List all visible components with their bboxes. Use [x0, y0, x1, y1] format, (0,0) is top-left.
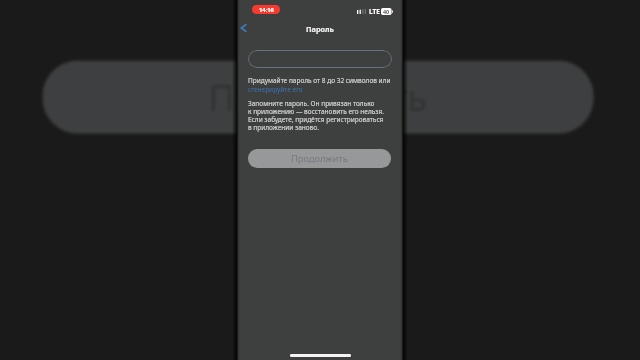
button[interactable]	[248, 50, 392, 68]
staticText: LTE	[369, 7, 380, 16]
staticText: Пароль	[306, 24, 334, 34]
staticText: Продолжить	[208, 72, 428, 122]
button[interactable]: Back	[235, 20, 251, 36]
staticText: Придумайте пароль от 8 до 32 символов ил…	[248, 76, 391, 85]
staticText: 14:16	[259, 6, 274, 14]
button[interactable]: Продолжить	[248, 149, 391, 168]
staticText: 40	[381, 8, 391, 15]
staticText: Продолжить	[291, 152, 348, 165]
button[interactable]: сгенерируйте его	[248, 85, 303, 94]
staticText: Запомните пароль. Он привязан только к п…	[248, 99, 400, 132]
